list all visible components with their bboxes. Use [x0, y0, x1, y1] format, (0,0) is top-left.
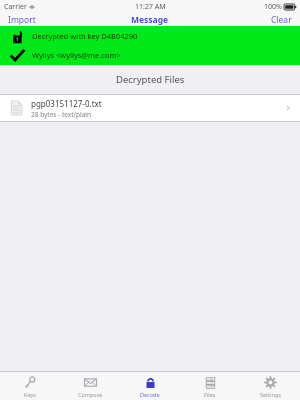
staticText: Clear: [271, 14, 292, 26]
button[interactable]: Import: [0, 13, 44, 26]
staticText: pgp03151127-0.txt: [31, 98, 102, 109]
staticText: Decrypted with key D4B04290: [32, 31, 138, 41]
staticText: Decode: [140, 391, 160, 398]
staticText: Message: [131, 14, 169, 26]
other: Unlocked: [9, 27, 26, 44]
staticText: Files: [204, 391, 216, 398]
button[interactable]: Decode: [120, 372, 180, 400]
staticText: Compose: [78, 391, 103, 398]
staticText: Wyllys <wyllys@me.com>: [32, 50, 121, 60]
staticText: Decrypted Files: [116, 73, 185, 86]
button[interactable]: Files: [180, 372, 240, 400]
button[interactable]: Verified: [0, 45, 300, 65]
button[interactable]: pgp03151127-0.txt: [0, 95, 300, 121]
staticText: Import: [8, 14, 36, 26]
staticText: 100%: [264, 2, 282, 12]
staticText: Keys: [24, 391, 36, 398]
staticText: Settings: [260, 391, 281, 398]
staticText: Carrier: [4, 2, 27, 12]
other: Verified: [9, 47, 26, 64]
button[interactable]: Unlocked: [0, 26, 300, 45]
button[interactable]: Clear: [263, 13, 300, 26]
button[interactable]: Settings: [240, 372, 300, 400]
button[interactable]: Keys: [0, 372, 60, 400]
staticText: 11:27 AM: [135, 2, 166, 12]
button[interactable]: Compose: [60, 372, 120, 400]
staticText: 28 bytes - text/plain: [31, 110, 92, 119]
